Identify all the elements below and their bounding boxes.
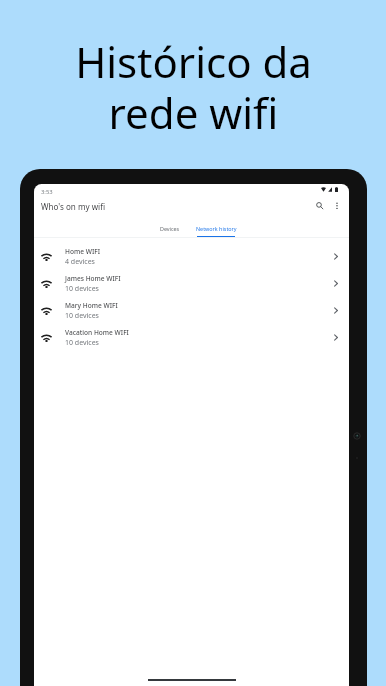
staticText: 4 devices — [65, 257, 95, 267]
staticText: Mary Home WIFI — [65, 301, 118, 310]
staticText: 10 devices — [65, 311, 99, 321]
button[interactable]: James Home WIFI — [34, 270, 349, 297]
staticText: Histórico da rede wifi — [75, 33, 312, 141]
staticText: 10 devices — [65, 284, 99, 294]
button[interactable]: Network history — [177, 220, 255, 238]
button[interactable]: Home WIFI — [34, 243, 349, 270]
staticText: 3:53 — [41, 188, 53, 196]
staticText: Home WIFI — [65, 247, 101, 256]
staticText: Network history — [196, 225, 237, 232]
button[interactable]: Mary Home WIFI — [34, 297, 349, 324]
staticText: 10 devices — [65, 338, 99, 348]
button[interactable]: Vacation Home WIFI — [34, 324, 349, 351]
button[interactable]: Search — [312, 198, 327, 213]
button[interactable]: More options — [329, 198, 344, 213]
button[interactable]: Devices — [145, 220, 195, 238]
staticText: Devices — [160, 225, 180, 232]
staticText: Vacation Home WIFI — [65, 328, 129, 337]
staticText: James Home WIFI — [65, 274, 121, 283]
staticText: Who's on my wifi — [41, 201, 106, 212]
